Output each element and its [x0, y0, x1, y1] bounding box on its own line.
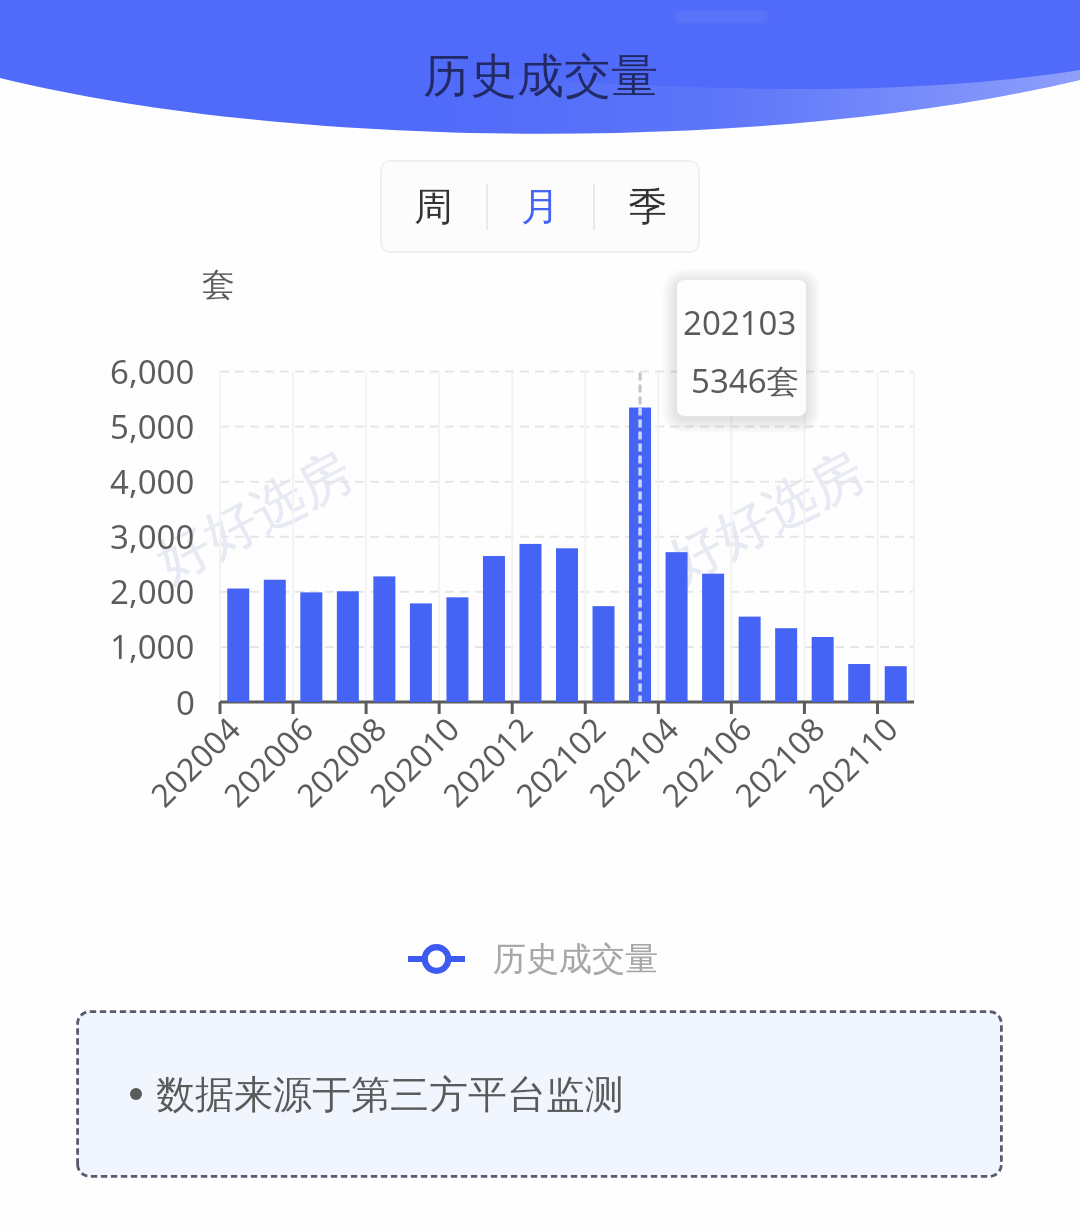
button[interactable]: 历史成交量 [0, 938, 1073, 980]
button[interactable]: 季 [595, 160, 700, 253]
button[interactable]: 数据来源于第三方平台监测 [76, 1010, 1003, 1178]
staticText: 季 [628, 182, 667, 231]
button[interactable]: 月 [488, 160, 593, 253]
staticText: 历史成交量 [423, 47, 658, 106]
staticText: 数据来源于第三方平台监测 [156, 1070, 624, 1119]
staticText: 历史成交量 [493, 938, 658, 980]
staticText: 月 [521, 182, 560, 231]
button[interactable]: 周 [380, 160, 486, 253]
staticText: 周 [414, 182, 453, 231]
button[interactable] [677, 280, 806, 416]
